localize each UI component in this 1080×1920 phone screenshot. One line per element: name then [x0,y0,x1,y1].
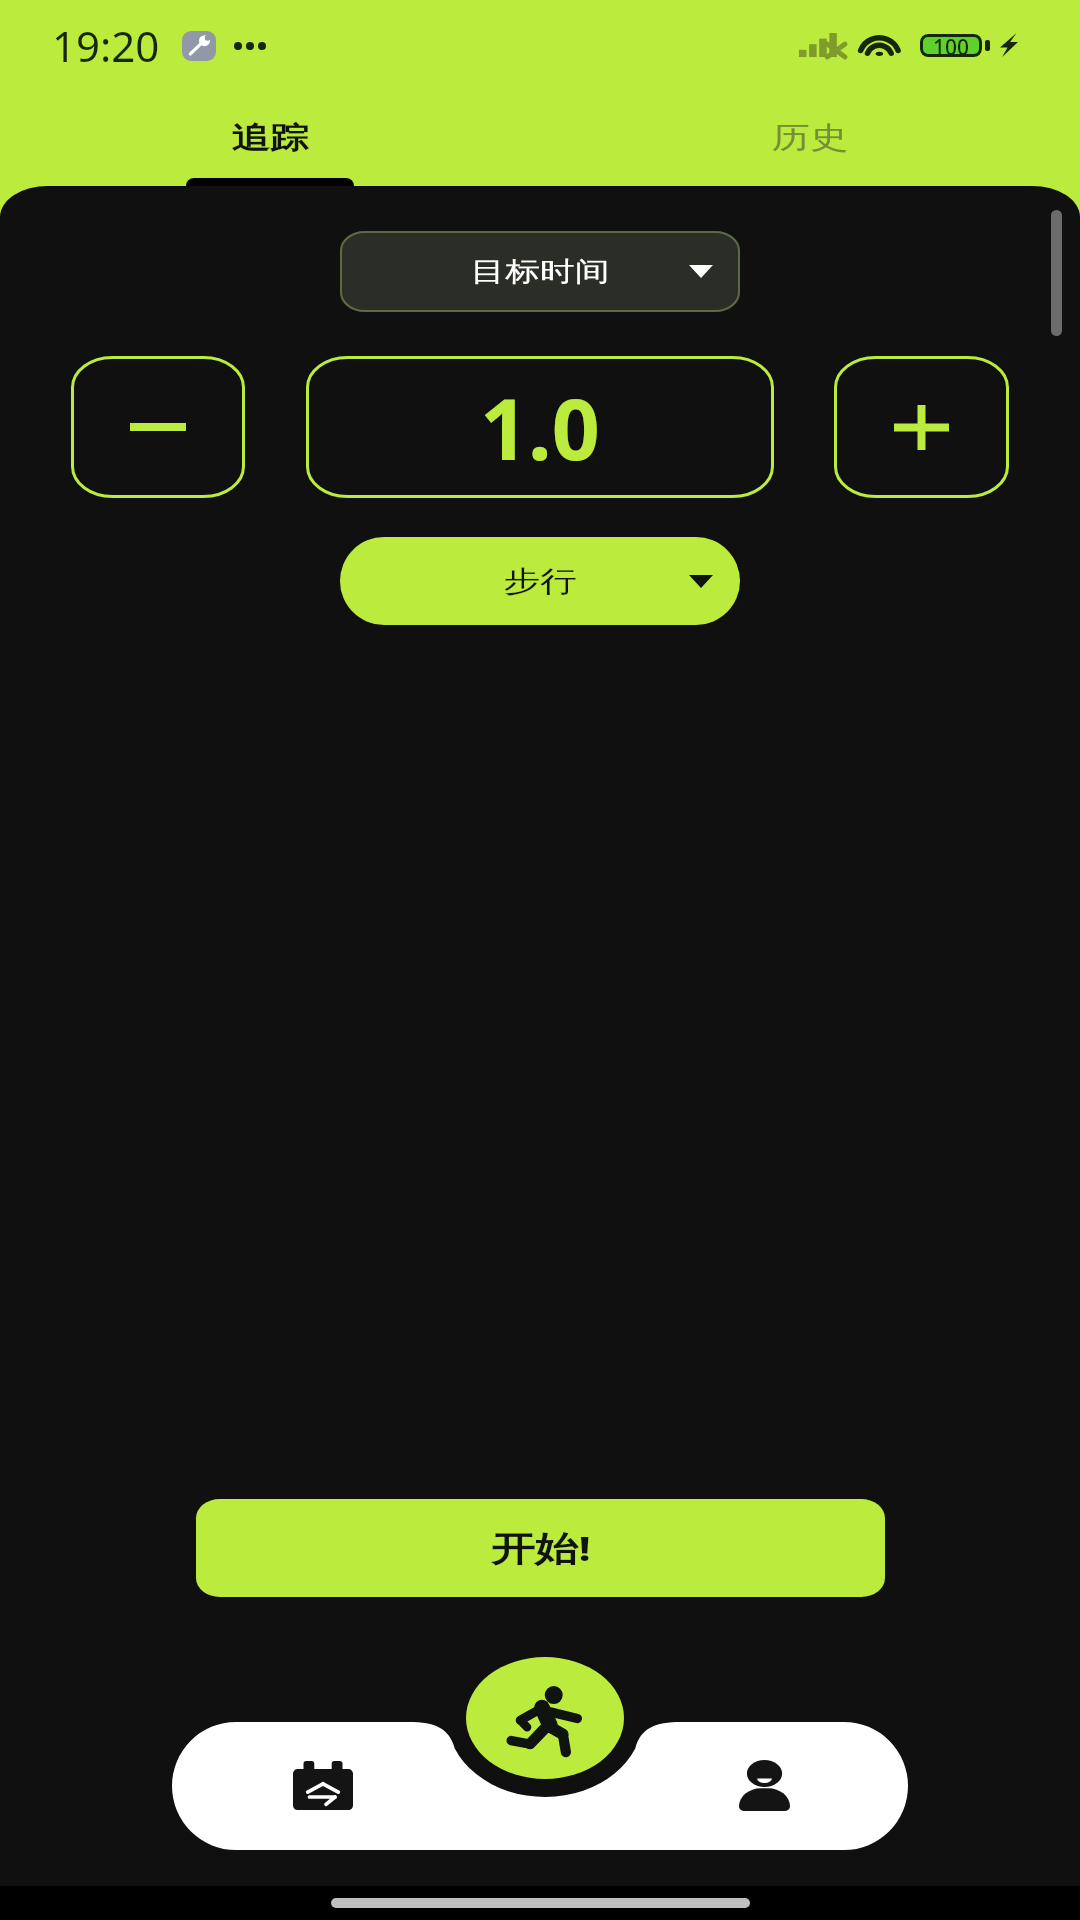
staticText: 1.0 [480,370,600,484]
staticText: 步行 [503,563,577,599]
button[interactable]: 目标时间 [340,231,740,312]
button[interactable] [834,356,1009,498]
button[interactable] [71,356,245,498]
staticText: 历史 [772,120,848,157]
button[interactable]: Profile [704,1725,824,1845]
button[interactable]: 步行 [340,537,740,625]
button[interactable]: 1.0 [306,356,774,498]
staticText: 目标时间 [470,255,610,289]
staticText: 19:20 [52,17,160,74]
staticText: 追踪 [232,120,308,157]
button[interactable]: 开始! [196,1499,885,1597]
staticText: 100 [933,34,970,56]
button[interactable]: 历史 [540,90,1080,186]
button[interactable]: Start activity [466,1657,624,1779]
staticText: 开始! [491,1524,591,1572]
button[interactable]: 追踪 [0,90,540,186]
button[interactable]: Today [263,1725,383,1845]
